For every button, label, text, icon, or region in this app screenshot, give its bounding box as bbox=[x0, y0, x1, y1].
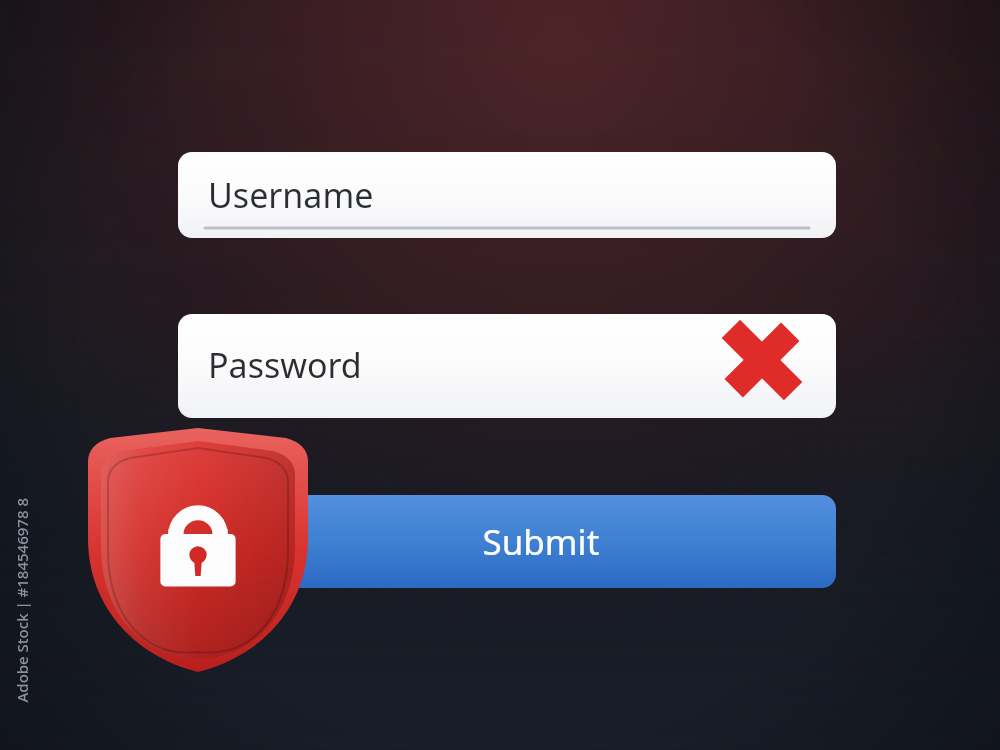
button[interactable]: Security shield bbox=[84, 420, 312, 676]
button[interactable] bbox=[178, 314, 836, 418]
button[interactable] bbox=[178, 152, 836, 238]
button[interactable]: Password invalid bbox=[712, 316, 812, 404]
button[interactable] bbox=[178, 495, 836, 588]
